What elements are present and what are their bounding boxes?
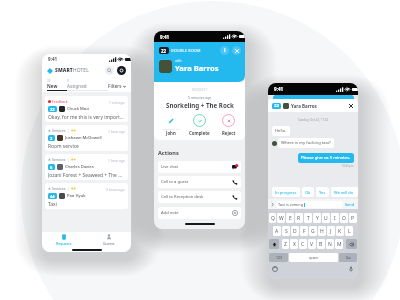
button[interactable]: 0 [67, 79, 97, 89]
button[interactable]: 22 [47, 79, 67, 89]
staticText: DOUBLE ROOM [171, 48, 201, 53]
button[interactable]: J [327, 226, 335, 236]
button[interactable]: Call to Reception desk [158, 191, 241, 203]
button[interactable]: space [289, 253, 338, 262]
button[interactable]: Close [347, 102, 354, 109]
button[interactable]: L [345, 226, 353, 236]
staticText: 44 [50, 194, 55, 199]
button[interactable]: Call to a guest [158, 176, 241, 188]
button[interactable]: S [282, 226, 290, 236]
button[interactable]: V [308, 239, 316, 249]
staticText: Y [316, 215, 319, 222]
button[interactable]: Filters [108, 83, 126, 89]
staticText: Filters [108, 83, 122, 89]
button[interactable]: ASSIGNED TO [157, 113, 184, 137]
button[interactable]: Reject [215, 113, 242, 137]
button[interactable]: K [336, 226, 344, 236]
staticText: 9:41 [48, 56, 58, 62]
button[interactable]: M [335, 239, 343, 249]
button[interactable]: Settings [117, 66, 126, 75]
staticText: G [311, 228, 315, 235]
button[interactable]: R [295, 213, 303, 223]
staticText: 1 hour ago [108, 129, 125, 133]
button[interactable]: U [322, 213, 330, 223]
button[interactable]: D [291, 226, 299, 236]
staticText: ASSIGNED TO [162, 127, 180, 130]
button[interactable]: Services [45, 154, 128, 180]
staticText: Please give us 5 minutes. [301, 155, 351, 161]
button[interactable]: In progress [272, 187, 300, 197]
button[interactable]: Y [313, 213, 321, 223]
button[interactable]: Live chat [158, 161, 241, 173]
button[interactable]: B [317, 239, 325, 249]
staticText: H [320, 228, 324, 235]
staticText: 123 [276, 255, 282, 260]
staticText: | [68, 187, 70, 191]
button[interactable]: Add note [158, 207, 241, 219]
staticText: Add note [161, 210, 179, 216]
staticText: John [166, 130, 176, 136]
staticText: 9:41 [160, 34, 170, 40]
button[interactable]: Info [220, 46, 229, 55]
button[interactable]: Yes [316, 187, 329, 197]
button[interactable]: T [304, 213, 312, 223]
staticText: 6 [50, 165, 53, 170]
button[interactable]: Requests [42, 232, 86, 247]
button[interactable]: O [340, 213, 348, 223]
button[interactable]: X [290, 239, 298, 249]
button[interactable]: Ok [302, 187, 314, 197]
button[interactable]: Shift [269, 239, 279, 249]
staticText: 22 [47, 79, 51, 83]
button[interactable]: We will do this. [331, 187, 358, 197]
staticText: Ok [305, 190, 311, 195]
button[interactable]: A [273, 226, 281, 236]
button[interactable]: H [318, 226, 326, 236]
staticText: i [224, 47, 226, 54]
staticText: P [351, 215, 355, 222]
staticText: O [342, 215, 346, 222]
button[interactable]: Feedback [45, 96, 128, 122]
staticText: T [307, 215, 310, 222]
button[interactable]: F [300, 226, 308, 236]
staticText: Feedback [52, 99, 68, 104]
staticText: with [175, 59, 182, 63]
staticText: Send [345, 202, 355, 207]
button[interactable]: Guests [86, 232, 131, 247]
button[interactable]: Backspace [346, 239, 357, 249]
button[interactable]: 123 [269, 253, 288, 262]
button[interactable]: G [309, 226, 317, 236]
button[interactable]: Services [45, 183, 128, 209]
button[interactable]: Q [269, 213, 276, 223]
button[interactable]: Z [282, 239, 289, 249]
staticText: 3 hours ago [106, 187, 125, 191]
button[interactable]: Go [339, 253, 357, 262]
staticText: | [68, 129, 70, 133]
button[interactable]: P [349, 213, 357, 223]
staticText: Jozani Forest + Seaweed + The Rock [48, 172, 125, 178]
staticText: In progress [275, 190, 297, 195]
staticText: 5 minutes ago [188, 95, 212, 100]
button[interactable]: C [299, 239, 307, 249]
staticText: Call to Reception desk [161, 194, 204, 200]
staticText: Complete [189, 130, 210, 136]
staticText: 22 [274, 103, 279, 109]
button[interactable]: W [277, 213, 285, 223]
staticText: Snorkeling + The Rock [166, 101, 234, 109]
button[interactable]: N [326, 239, 334, 249]
staticText: I [334, 215, 336, 222]
staticText: Services [52, 186, 66, 191]
button[interactable]: E [286, 213, 294, 223]
staticText: Yes [319, 190, 326, 195]
button[interactable]: Search [105, 66, 114, 75]
staticText: B [319, 241, 323, 248]
staticText: 22 [161, 48, 167, 54]
button[interactable]: I [331, 213, 339, 223]
button[interactable]: Close [232, 46, 241, 55]
button[interactable]: Complete [186, 113, 213, 137]
button[interactable]: Services [45, 125, 128, 151]
staticText: Go [346, 255, 351, 260]
staticText: 2 [50, 136, 53, 141]
staticText: Requests [56, 241, 72, 246]
staticText: C [301, 241, 305, 248]
staticText: D [293, 228, 297, 235]
